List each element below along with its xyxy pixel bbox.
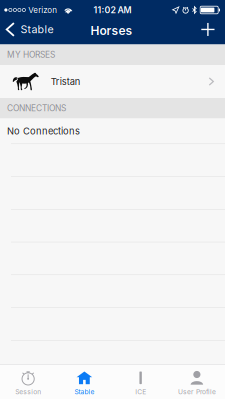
staticText: MY HORSES	[7, 50, 55, 60]
staticText: Session	[15, 388, 41, 396]
button[interactable]: ICE	[112, 364, 169, 399]
staticText: ICE	[135, 388, 146, 396]
staticText: Tristan	[51, 76, 81, 87]
staticText: No Connections	[7, 125, 80, 137]
staticText: 11:02 AM	[93, 5, 131, 15]
staticText: Stable	[20, 23, 53, 36]
staticText: User Profile	[178, 388, 216, 396]
button[interactable]: User Profile	[169, 364, 225, 399]
staticText: CONNECTIONS	[7, 103, 66, 113]
button[interactable]: Stable	[56, 364, 112, 399]
button[interactable]: Stable	[0, 22, 57, 43]
staticText: Verizon	[28, 5, 57, 15]
staticText: Stable	[74, 388, 94, 396]
button[interactable]: Tristan	[0, 65, 225, 98]
button[interactable]: Session	[0, 364, 56, 399]
staticText: Horses	[90, 23, 132, 38]
button[interactable]: Add horse	[195, 23, 225, 42]
